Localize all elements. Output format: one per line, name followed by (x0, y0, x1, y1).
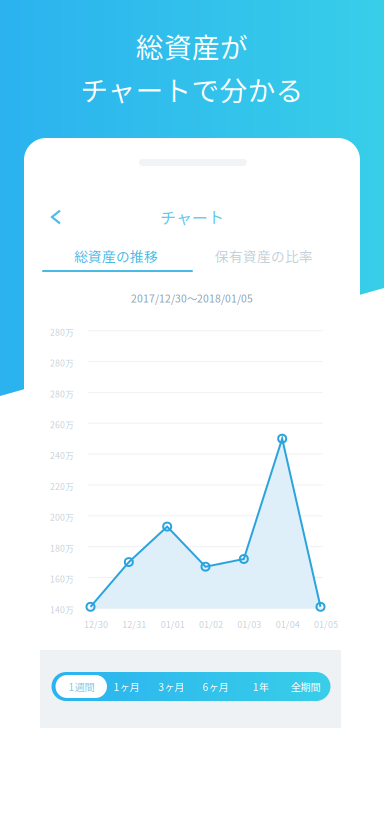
staticText: 全期間 (290, 679, 320, 694)
staticText: 240万 (50, 449, 74, 462)
button[interactable]: 6ヶ月 (192, 672, 238, 701)
button[interactable]: Back (38, 199, 74, 235)
staticText: 280万 (50, 387, 74, 400)
staticText: チャート (160, 205, 224, 229)
button[interactable]: 1週間 (58, 672, 104, 701)
button[interactable]: 全期間 (282, 672, 328, 701)
staticText: 160万 (50, 572, 74, 585)
staticText: 220万 (50, 480, 74, 492)
staticText: 6ヶ月 (202, 679, 228, 694)
staticText: 140万 (50, 603, 74, 616)
staticText: 3ヶ月 (158, 679, 184, 694)
staticText: チャートで分かる (80, 69, 303, 109)
staticText: 01/05 (314, 617, 338, 630)
staticText: 180万 (50, 542, 74, 554)
staticText: 2017/12/30〜2018/01/05 (131, 290, 253, 306)
staticText: 1年 (253, 679, 269, 694)
staticText: 12/31 (122, 617, 146, 630)
button[interactable]: 3ヶ月 (148, 672, 194, 701)
staticText: 保有資産の比率 (215, 246, 313, 266)
button[interactable]: 1ヶ月 (103, 672, 149, 701)
staticText: 01/02 (199, 617, 223, 630)
button[interactable]: 総資産の推移 (32, 237, 200, 275)
staticText: 1週間 (68, 679, 94, 694)
staticText: 総資産が (136, 26, 248, 66)
button[interactable]: 1年 (238, 672, 284, 701)
staticText: 総資産の推移 (74, 246, 158, 266)
staticText: 280万 (50, 356, 74, 369)
staticText: 1ヶ月 (113, 679, 139, 694)
button[interactable]: 保有資産の比率 (180, 237, 348, 275)
staticText: 260万 (50, 418, 74, 431)
staticText: 01/01 (161, 617, 185, 630)
staticText: 01/04 (276, 617, 300, 630)
staticText: 12/30 (84, 617, 108, 630)
staticText: 200万 (50, 511, 74, 523)
staticText: 280万 (50, 326, 74, 338)
staticText: 01/03 (237, 617, 261, 630)
